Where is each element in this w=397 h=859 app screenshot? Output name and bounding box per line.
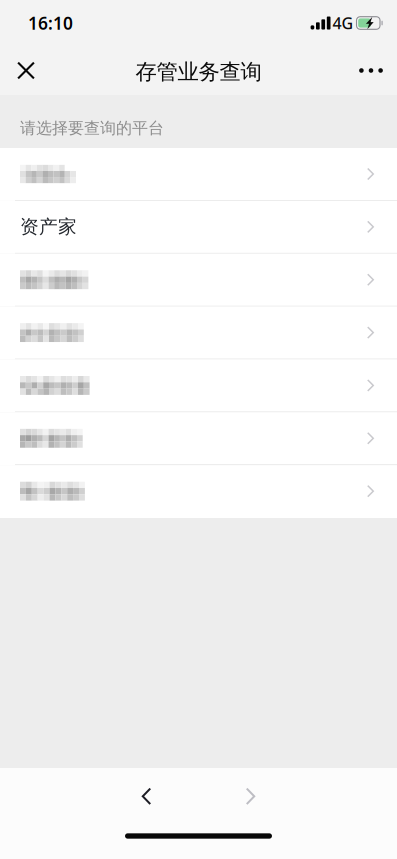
button[interactable] [0,307,397,359]
staticText: 16:10 [28,11,73,34]
button[interactable]: 资产家 [0,201,397,254]
button[interactable] [0,412,397,465]
staticText: 请选择要查询的平台 [20,118,164,138]
button[interactable]: Forward [222,775,278,817]
button[interactable] [0,359,397,412]
button[interactable] [0,465,397,518]
button[interactable] [0,254,397,307]
button[interactable]: Back [118,775,174,817]
staticText: 资产家 [20,215,77,238]
staticText: 存管业务查询 [135,59,261,85]
button[interactable]: Close [3,46,49,95]
button[interactable] [0,148,397,201]
button[interactable]: More [349,46,393,95]
staticText: 4G [332,12,353,34]
